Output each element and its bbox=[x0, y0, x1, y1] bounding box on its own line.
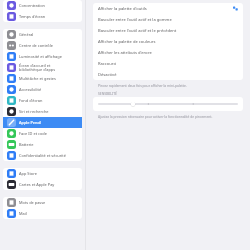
staticText: Temps d'écran bbox=[19, 14, 46, 19]
staticText: Raccourci bbox=[98, 61, 117, 67]
staticText: Basculer entre l'outil actif et la gomme bbox=[98, 17, 172, 23]
button[interactable]: Afficher la palette de couleurs bbox=[93, 36, 243, 47]
staticText: Fond d'écran bbox=[19, 98, 43, 103]
button[interactable]: Basculer entre l'outil actif et le précé… bbox=[93, 25, 243, 36]
button[interactable]: Multitâche et gestes bbox=[3, 73, 82, 84]
staticText: Mots de passe bbox=[19, 200, 46, 205]
button[interactable]: Apple Pencil bbox=[3, 117, 82, 128]
staticText: Afficher les attributs d'encre bbox=[98, 50, 152, 56]
button[interactable]: Temps d'écran bbox=[3, 11, 82, 22]
staticText: Batterie bbox=[19, 142, 34, 147]
button[interactable]: Raccourci bbox=[93, 58, 243, 69]
button[interactable]: Batterie bbox=[3, 139, 82, 150]
staticText: Ajustez la pression nécessaire pour acti… bbox=[98, 114, 213, 118]
staticText: Afficher la palette de couleurs bbox=[98, 39, 156, 45]
staticText: Écran d'accueil et bibliothèque d'apps bbox=[19, 63, 56, 73]
button[interactable]: Écran d'accueil et bibliothèque d'apps bbox=[3, 62, 82, 73]
button[interactable]: Face ID et code bbox=[3, 128, 82, 139]
staticText: Centre de contrôle bbox=[19, 43, 53, 48]
button[interactable]: Basculer entre l'outil actif et la gomme bbox=[93, 14, 243, 25]
button[interactable]: Accessibilité bbox=[3, 84, 82, 95]
staticText: Concentration bbox=[19, 3, 45, 8]
button[interactable]: Afficher la palette d'outils bbox=[93, 3, 243, 14]
staticText: SENSIBILITÉ bbox=[98, 91, 117, 95]
staticText: Désactivé bbox=[98, 72, 117, 78]
button[interactable]: Luminosité et affichage bbox=[3, 51, 82, 62]
button[interactable]: Général bbox=[3, 29, 82, 40]
button[interactable]: Confidentialité et sécurité bbox=[3, 150, 82, 161]
other: Double tap bbox=[233, 6, 238, 11]
staticText: Multitâche et gestes bbox=[19, 76, 56, 81]
button[interactable]: App Store bbox=[3, 168, 82, 179]
staticText: Pincez rapidement deux fois pour affiche… bbox=[98, 83, 187, 87]
staticText: Luminosité et affichage bbox=[19, 54, 62, 59]
button[interactable] bbox=[93, 97, 243, 111]
staticText: Cartes et Apple Pay bbox=[19, 182, 55, 187]
staticText: Accessibilité bbox=[19, 87, 42, 92]
staticText: Basculer entre l'outil actif et le précé… bbox=[98, 28, 177, 34]
button[interactable]: Cartes et Apple Pay bbox=[3, 179, 82, 190]
staticText: App Store bbox=[19, 171, 37, 176]
button[interactable]: Centre de contrôle bbox=[3, 40, 82, 51]
staticText: Face ID et code bbox=[19, 131, 47, 136]
button[interactable]: Désactivé bbox=[93, 69, 243, 80]
button[interactable]: Mail bbox=[3, 208, 82, 219]
button[interactable]: Mots de passe bbox=[3, 197, 82, 208]
button[interactable]: Afficher les attributs d'encre bbox=[93, 47, 243, 58]
staticText: Afficher la palette d'outils bbox=[98, 6, 147, 12]
button[interactable]: Fond d'écran bbox=[3, 95, 82, 106]
staticText: Confidentialité et sécurité bbox=[19, 153, 66, 158]
button[interactable]: Concentration bbox=[3, 0, 82, 11]
staticText: Général bbox=[19, 32, 34, 37]
button[interactable]: Siri et recherche bbox=[3, 106, 82, 117]
staticText: Mail bbox=[19, 211, 27, 216]
staticText: Siri et recherche bbox=[19, 109, 49, 114]
staticText: Apple Pencil bbox=[19, 120, 42, 125]
